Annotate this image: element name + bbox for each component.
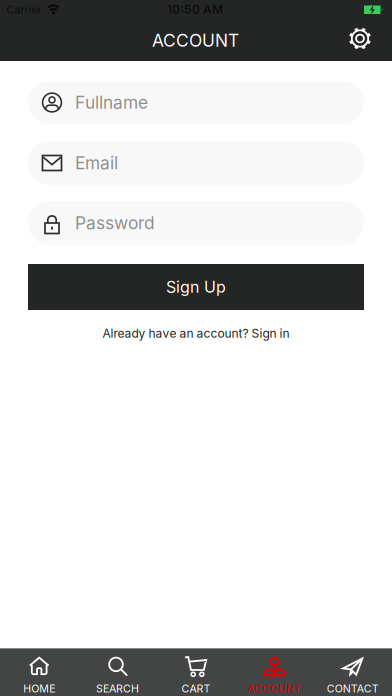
staticText: CONTACT: [327, 682, 379, 695]
button[interactable]: SEARCH: [78, 649, 157, 696]
staticText: Email: [75, 153, 118, 173]
staticText: Sign Up: [166, 278, 226, 296]
staticText: Already have an account? Sign in: [102, 326, 289, 341]
staticText: Password: [75, 213, 155, 233]
staticText: ACCOUNT: [247, 682, 301, 695]
staticText: CART: [181, 682, 210, 695]
button[interactable]: CONTACT: [314, 649, 392, 696]
staticText: SEARCH: [96, 682, 139, 695]
staticText: Fullname: [75, 92, 148, 113]
staticText: 10:50 AM: [167, 2, 223, 17]
staticText: ACCOUNT: [152, 30, 239, 51]
staticText: Carrier: [6, 3, 41, 16]
button[interactable]: Password: [28, 201, 364, 245]
button[interactable]: ACCOUNT: [235, 649, 314, 696]
button[interactable]: CART: [157, 649, 235, 696]
button[interactable]: [347, 25, 373, 51]
button[interactable]: Email: [28, 141, 364, 185]
button[interactable]: Already have an account? Sign in: [102, 326, 289, 341]
staticText: HOME: [23, 682, 55, 695]
button[interactable]: HOME: [0, 649, 78, 696]
button[interactable]: Fullname: [28, 81, 364, 124]
button[interactable]: Sign Up: [28, 264, 364, 310]
